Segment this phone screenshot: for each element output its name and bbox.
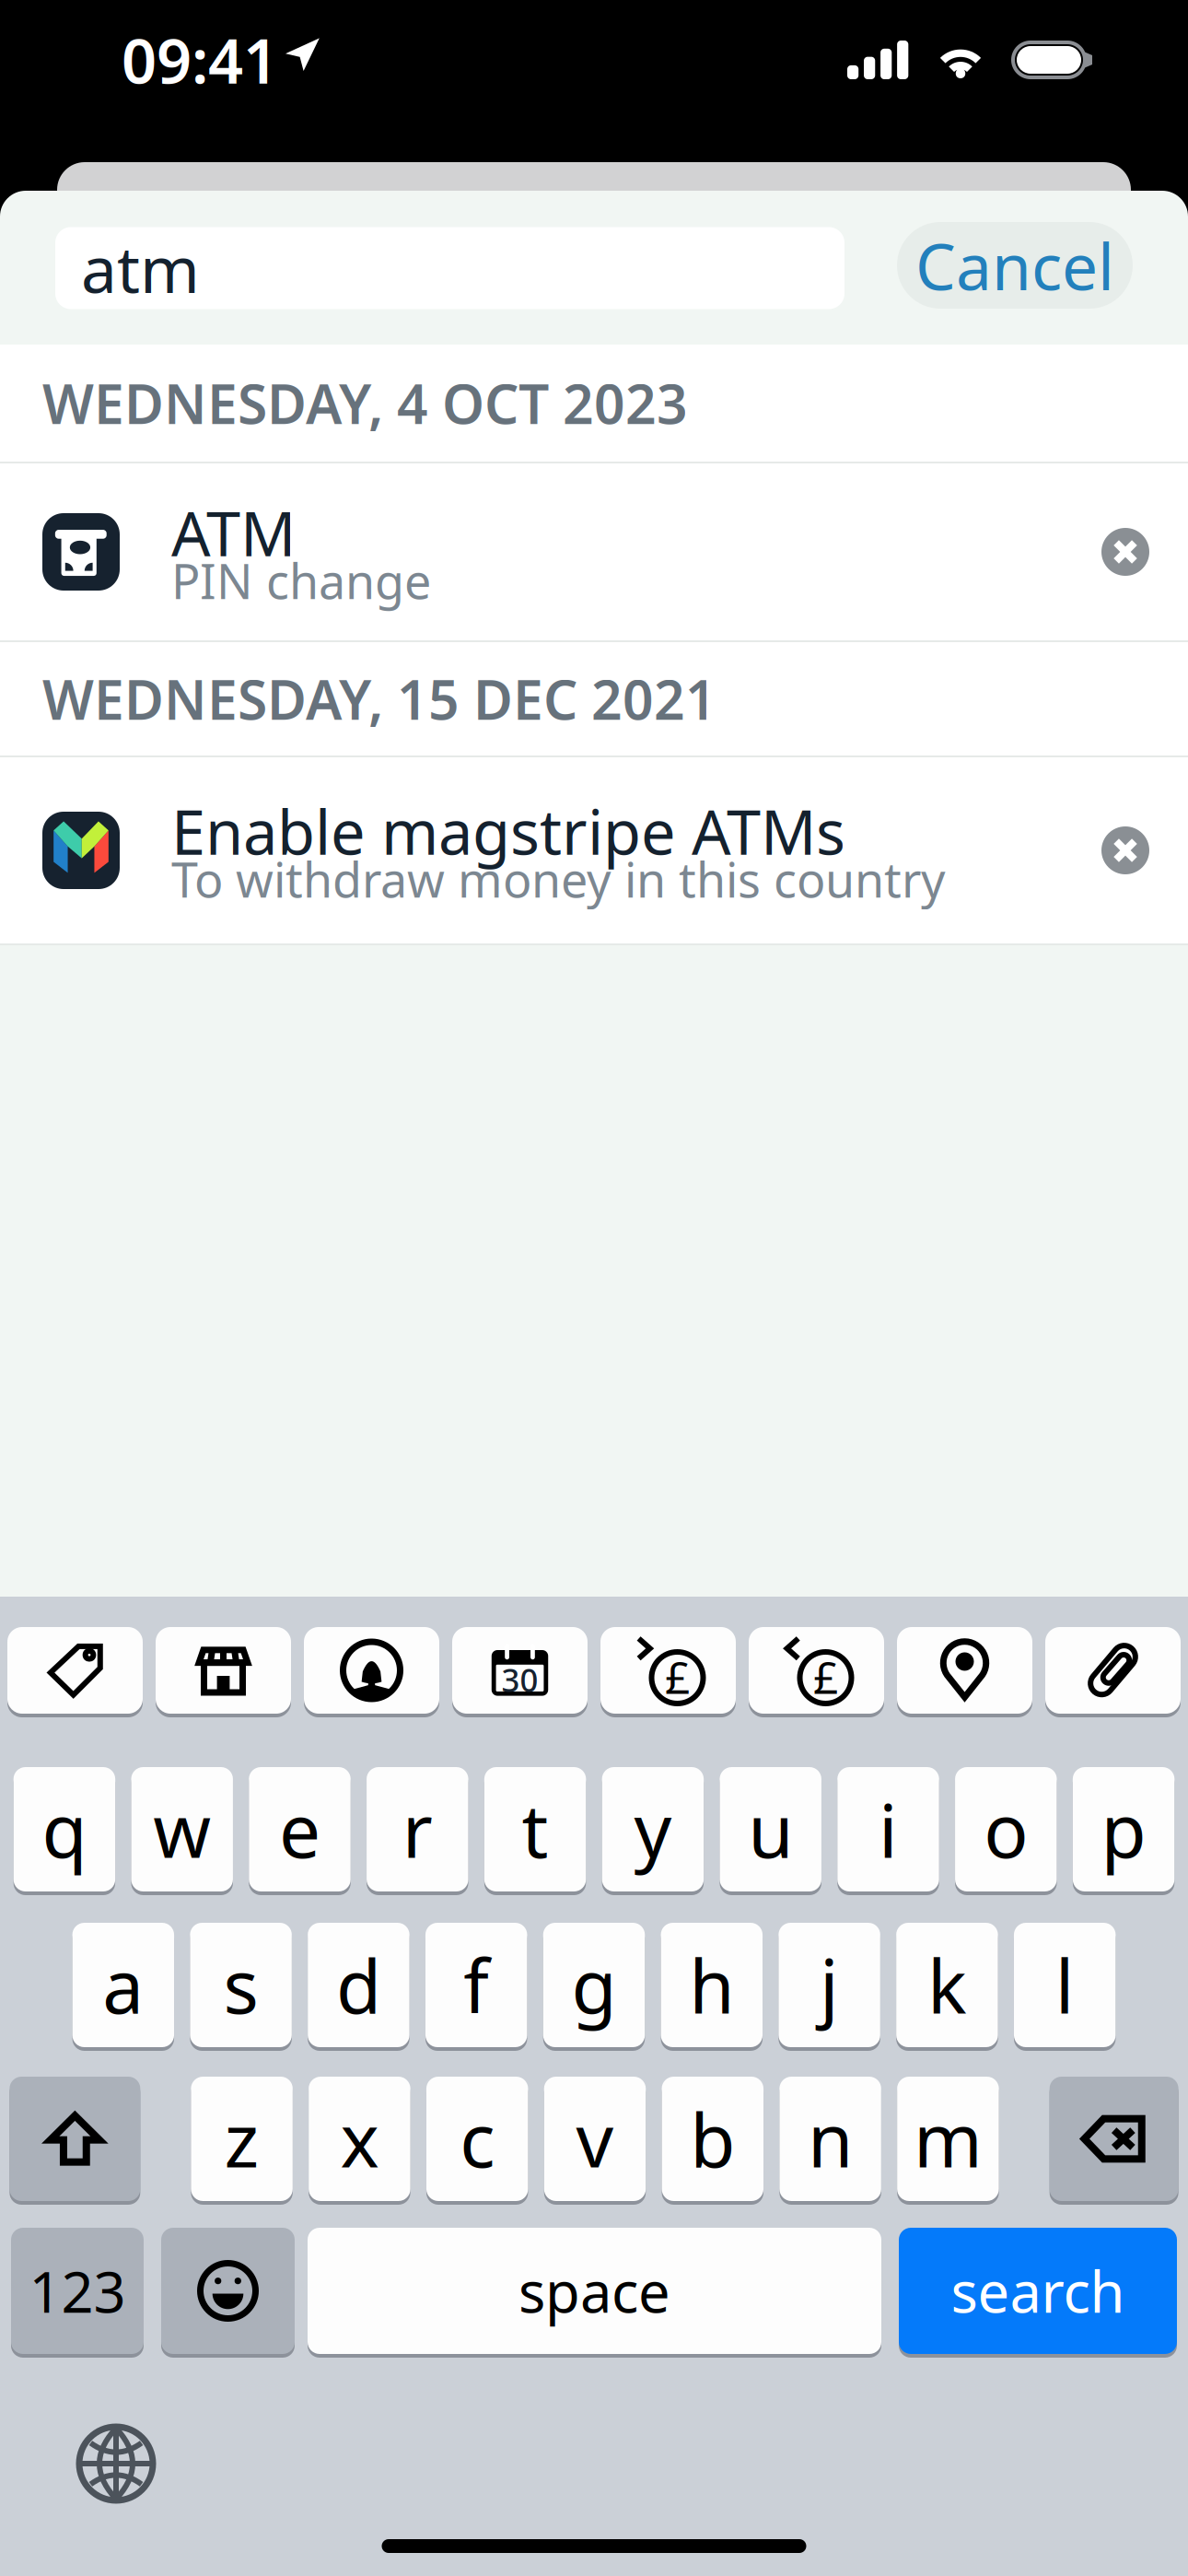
staticText: r (402, 1780, 433, 1878)
staticText: PIN change (171, 549, 431, 612)
button[interactable]: z (191, 2075, 293, 2203)
button[interactable]: f (425, 1921, 527, 2049)
button[interactable]: c (426, 2075, 528, 2203)
staticText: To withdraw money in this country (171, 847, 946, 911)
button[interactable]: v (544, 2075, 646, 2203)
button[interactable]: Merchant (156, 1625, 291, 1715)
staticText: b (690, 2090, 735, 2188)
staticText: h (689, 1936, 734, 2034)
staticText: x (340, 2090, 379, 2188)
staticText: atm (81, 226, 200, 311)
button[interactable]: k (896, 1921, 998, 2049)
button[interactable]: b (662, 2075, 763, 2203)
button[interactable]: e (249, 1765, 351, 1893)
button[interactable]: Emoji (161, 2226, 295, 2356)
button[interactable]: y (602, 1765, 704, 1893)
staticText: 123 (29, 2253, 126, 2328)
staticText: WEDNESDAY, 4 OCT 2023 (42, 367, 688, 439)
staticText: Enable magstripe ATMs (171, 790, 845, 872)
button[interactable]: l (1014, 1921, 1116, 2049)
button[interactable]: Money in (749, 1625, 884, 1715)
staticText: 30 (501, 1658, 538, 1701)
button[interactable]: Location (897, 1625, 1032, 1715)
button[interactable]: d (308, 1921, 409, 2049)
button[interactable]: a (72, 1921, 174, 2049)
staticText: £ (813, 1647, 838, 1706)
staticText: search (951, 2253, 1125, 2328)
staticText: a (102, 1936, 144, 2034)
button[interactable]: h (661, 1921, 763, 2049)
staticText: t (522, 1780, 549, 1878)
staticText: v (576, 2090, 614, 2188)
button[interactable]: Delete (1050, 2075, 1179, 2203)
button[interactable]: w (131, 1765, 233, 1893)
button[interactable]: Change keyboard (79, 2427, 153, 2500)
button[interactable]: n (779, 2075, 881, 2203)
button[interactable]: x (309, 2075, 410, 2203)
staticText: o (984, 1780, 1028, 1878)
button[interactable]: u (720, 1765, 821, 1893)
staticText: f (463, 1936, 489, 2034)
staticText: w (153, 1780, 211, 1878)
button[interactable]: o (955, 1765, 1057, 1893)
staticText: Cancel (915, 223, 1114, 308)
button[interactable]: Shift (10, 2075, 140, 2203)
button[interactable]: Numbers (11, 2226, 144, 2356)
staticText: c (460, 2090, 495, 2188)
staticText: d (336, 1936, 381, 2034)
staticText: l (1055, 1936, 1074, 2034)
button[interactable]: Money out (600, 1625, 736, 1715)
button[interactable]: ATM (0, 463, 1188, 640)
staticText: i (879, 1780, 898, 1878)
staticText: n (808, 2090, 853, 2188)
button[interactable]: Remove suggestion (1101, 528, 1149, 576)
button[interactable]: Enable magstripe ATMs (0, 757, 1188, 943)
staticText: u (748, 1780, 793, 1878)
staticText: z (224, 2090, 259, 2188)
button[interactable]: search (899, 2226, 1177, 2356)
staticText: e (279, 1780, 320, 1878)
staticText: ATM (171, 492, 296, 573)
staticText: space (518, 2253, 670, 2328)
button[interactable]: Attachment (1045, 1625, 1181, 1715)
button[interactable]: p (1073, 1765, 1174, 1893)
staticText: s (223, 1936, 258, 2034)
button[interactable]: s (190, 1921, 292, 2049)
button[interactable]: Date (452, 1625, 588, 1715)
staticText: p (1101, 1780, 1146, 1878)
button[interactable]: space (308, 2226, 881, 2356)
staticText: £ (665, 1647, 690, 1706)
staticText: g (571, 1936, 617, 2034)
button[interactable]: r (367, 1765, 468, 1893)
staticText: j (820, 1936, 839, 2034)
button[interactable]: Remove suggestion (1101, 826, 1149, 874)
staticText: 09:41 (122, 19, 278, 101)
button[interactable]: j (778, 1921, 880, 2049)
staticText: y (634, 1780, 672, 1878)
staticText: m (913, 2090, 983, 2188)
button[interactable]: m (897, 2075, 999, 2203)
staticText: q (42, 1780, 87, 1878)
button[interactable]: t (484, 1765, 586, 1893)
button[interactable]: q (13, 1765, 115, 1893)
button[interactable]: People (304, 1625, 439, 1715)
button[interactable]: Tags (7, 1625, 143, 1715)
button[interactable]: g (543, 1921, 645, 2049)
button[interactable]: i (837, 1765, 939, 1893)
staticText: WEDNESDAY, 15 DEC 2021 (42, 663, 716, 735)
button[interactable]: Cancel (897, 222, 1133, 309)
staticText: k (927, 1936, 967, 2034)
